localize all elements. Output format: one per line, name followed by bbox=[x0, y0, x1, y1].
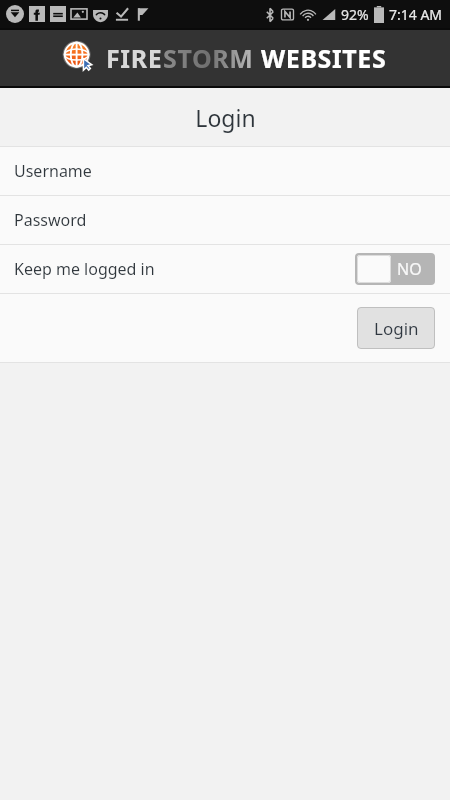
staticText: Login bbox=[374, 317, 419, 340]
button[interactable]: Username bbox=[0, 147, 450, 195]
staticText: WEBSITES bbox=[261, 41, 387, 75]
staticText: Password bbox=[14, 209, 87, 231]
other: Keep me logged in toggle, off bbox=[355, 253, 435, 285]
staticText: Username bbox=[14, 160, 92, 182]
staticText: NO bbox=[397, 258, 422, 280]
staticText: 92% bbox=[341, 5, 369, 24]
staticText: Login bbox=[195, 102, 256, 133]
button[interactable]: Password bbox=[0, 196, 450, 244]
staticText: Keep me logged in bbox=[14, 258, 155, 280]
staticText: FIRE bbox=[106, 41, 163, 75]
button[interactable]: Login bbox=[357, 307, 435, 349]
button[interactable]: Keep me logged in bbox=[0, 245, 450, 293]
staticText: 7:14 AM bbox=[389, 5, 443, 24]
staticText: STORM bbox=[163, 41, 254, 75]
